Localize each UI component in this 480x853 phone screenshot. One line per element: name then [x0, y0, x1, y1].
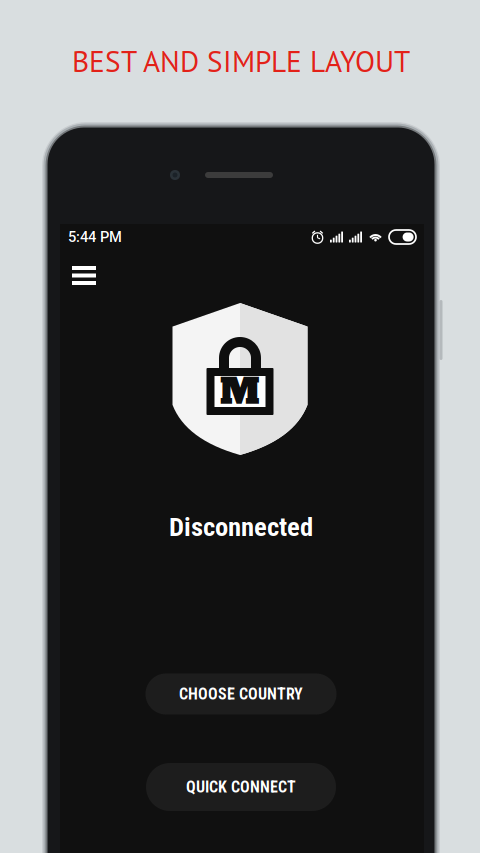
- staticText: Disconnected: [169, 511, 313, 543]
- staticText: QUICK CONNECT: [186, 778, 296, 796]
- button[interactable]: Menu: [61, 255, 107, 296]
- button[interactable]: QUICK CONNECT: [146, 763, 336, 811]
- staticText: 5:44 PM: [68, 228, 122, 246]
- button[interactable]: CHOOSE COUNTRY: [145, 673, 336, 714]
- staticText: CHOOSE COUNTRY: [179, 685, 303, 703]
- staticText: BEST AND SIMPLE LAYOUT: [72, 42, 410, 80]
- staticText: M: [220, 368, 260, 415]
